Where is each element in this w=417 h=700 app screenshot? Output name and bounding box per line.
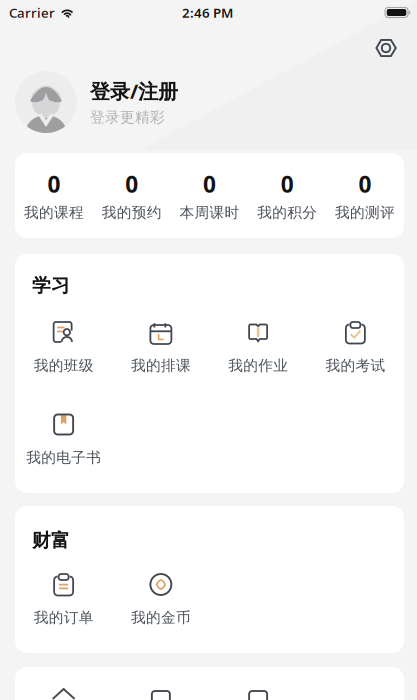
staticText: 我的班级 (34, 356, 94, 374)
staticText: 我的金币 (131, 608, 191, 626)
button[interactable]: 0 (171, 174, 248, 220)
button[interactable]: 0 (326, 174, 404, 220)
staticText: 我的预约 (102, 203, 162, 221)
button[interactable]: 我的金币 (112, 572, 209, 625)
staticText: 我的课程 (24, 203, 84, 221)
staticText: 我的订单 (34, 608, 94, 626)
staticText: 我的考试 (325, 356, 385, 374)
button[interactable]: 关于我们 (209, 687, 307, 700)
staticText: 0 (47, 169, 60, 199)
staticText: 2:46 PM (182, 4, 233, 21)
staticText: 学习 (32, 274, 70, 297)
staticText: 0 (281, 169, 294, 199)
button[interactable]: 我的考试 (307, 320, 404, 373)
button[interactable]: 我的排课 (112, 320, 209, 373)
button[interactable]: 0 (248, 174, 326, 220)
button[interactable]: 我的作业 (209, 320, 307, 373)
staticText: 我的排课 (131, 356, 191, 374)
staticText: 本周课时 (179, 203, 239, 221)
staticText: 登录/注册 (90, 78, 178, 104)
staticText: 我的作业 (228, 356, 288, 374)
staticText: 财富 (32, 529, 70, 552)
button[interactable]: 我的班级 (15, 320, 112, 373)
staticText: Carrier (9, 4, 55, 21)
button[interactable]: 意见反馈 (112, 687, 209, 700)
button[interactable]: 我的订单 (15, 572, 112, 625)
staticText: 我的电子书 (26, 448, 101, 466)
staticText: 我的测评 (335, 203, 395, 221)
button[interactable]: 登录/注册 (15, 71, 405, 133)
staticText: 0 (203, 169, 216, 199)
button[interactable]: Settings (366, 28, 406, 68)
staticText: 我的积分 (257, 203, 317, 221)
button[interactable]: 0 (93, 174, 171, 220)
staticText: 0 (359, 169, 372, 199)
staticText: 登录更精彩 (90, 108, 165, 126)
staticText: 0 (125, 169, 138, 199)
button[interactable]: 0 (15, 174, 93, 220)
button[interactable]: 我的电子书 (15, 412, 112, 465)
button[interactable]: 应用设置 (15, 687, 112, 700)
